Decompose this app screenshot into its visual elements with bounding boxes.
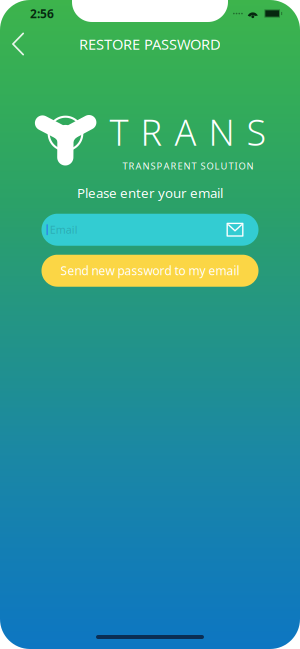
staticText: RESTORE PASSWORD [79,34,221,54]
staticText: Send new password to my email [60,263,239,279]
button[interactable]: Back [0,27,36,61]
staticText: Please enter your email [77,184,223,202]
staticText: T R A N S [109,108,266,156]
staticText: T R A N S P A R E N T S O L U T I O N [122,160,253,172]
staticText: 2:56 [30,5,54,21]
button[interactable]: Send new password to my email [41,255,258,287]
staticText: Email [50,223,78,237]
